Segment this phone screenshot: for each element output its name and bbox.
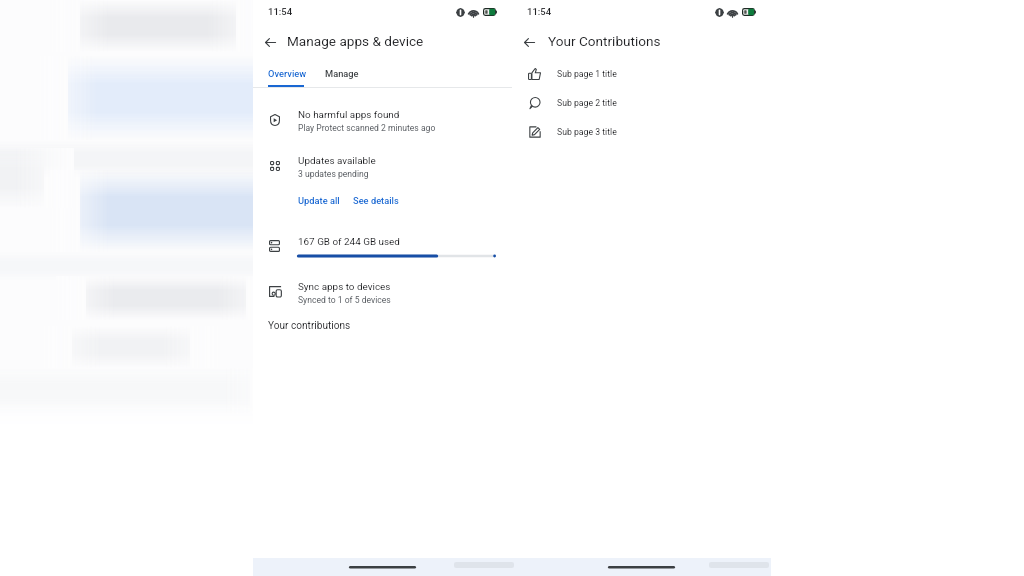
staticText: Update all bbox=[298, 195, 340, 206]
button[interactable]: Sub page 1 title bbox=[512, 59, 771, 88]
staticText: 167 GB of 244 GB used bbox=[298, 236, 400, 248]
staticText: Updates available bbox=[298, 155, 376, 167]
staticText: Your contributions bbox=[268, 320, 351, 332]
button[interactable]: Manage bbox=[315, 60, 369, 86]
staticText: 3 updates pending bbox=[298, 169, 369, 179]
button[interactable]: Back bbox=[253, 25, 287, 59]
staticText: Sub page 2 title bbox=[557, 98, 617, 108]
staticText: Sync apps to devices bbox=[298, 281, 391, 293]
button[interactable]: Sync apps to devices bbox=[253, 275, 512, 311]
staticText: Sub page 3 title bbox=[557, 127, 617, 137]
staticText: 11:54 bbox=[268, 6, 293, 17]
button[interactable]: Sub page 3 title bbox=[512, 117, 771, 146]
staticText: Overview bbox=[268, 68, 307, 79]
staticText: Your Contributions bbox=[548, 33, 661, 49]
staticText: Synced to 1 of 5 devices bbox=[298, 295, 391, 305]
staticText: Sub page 1 title bbox=[557, 69, 617, 79]
button[interactable]: Sub page 2 title bbox=[512, 88, 771, 117]
button[interactable]: 167 GB of 244 GB used bbox=[253, 230, 512, 266]
button[interactable]: Back bbox=[512, 25, 546, 59]
button[interactable]: Update all bbox=[296, 194, 342, 207]
staticText: Play Protect scanned 2 minutes ago bbox=[298, 123, 436, 133]
staticText: See details bbox=[353, 195, 399, 206]
staticText: No harmful apps found bbox=[298, 109, 400, 121]
button[interactable]: See details bbox=[351, 194, 401, 207]
staticText: Manage bbox=[325, 68, 359, 79]
button[interactable]: Overview bbox=[258, 60, 317, 86]
staticText: Manage apps & device bbox=[287, 33, 424, 49]
button[interactable]: Updates available bbox=[253, 149, 512, 185]
staticText: 11:54 bbox=[527, 6, 552, 17]
button[interactable]: No harmful apps found bbox=[253, 103, 512, 139]
